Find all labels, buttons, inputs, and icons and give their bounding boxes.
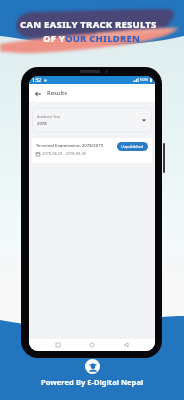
button[interactable]: Back <box>121 340 131 350</box>
staticText: CAN EASILY TRACK RESULTS <box>20 18 157 31</box>
button[interactable]: Academic Year <box>32 108 152 132</box>
button[interactable]: Terminal Examination 2078/2079 <box>32 138 152 163</box>
staticText: 1:52 <box>32 77 42 83</box>
staticText: 2078 <box>37 121 47 127</box>
button[interactable]: Recent apps <box>53 340 63 350</box>
staticText: 2078-08-29 - 2078-09-30 <box>42 151 86 156</box>
staticText: Powered By E-Digital Nepal <box>41 377 144 387</box>
staticText: Results <box>47 89 68 97</box>
button[interactable]: Unpublished <box>117 142 148 151</box>
button[interactable]: Home <box>87 340 97 350</box>
staticText: OF YOUR CHILDREN <box>43 32 141 45</box>
button[interactable]: E-Digital Nepal logo <box>85 359 100 374</box>
staticText: 50% <box>140 77 149 83</box>
staticText: Academic Year <box>37 114 61 119</box>
button[interactable]: Back <box>32 88 43 99</box>
staticText: Terminal Examination 2078/2079 <box>36 142 104 148</box>
staticText: Unpublished <box>121 144 144 149</box>
